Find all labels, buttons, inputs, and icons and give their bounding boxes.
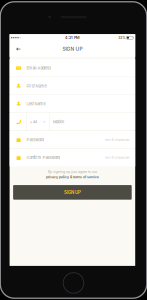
staticText: SIGN UP: [64, 190, 81, 195]
staticText: Email Address: [26, 66, 51, 70]
button[interactable]: First Name: [10, 77, 135, 95]
staticText: Mobile: [53, 119, 64, 124]
button[interactable]: Last Name: [10, 95, 135, 113]
button[interactable]: Email Address: [10, 59, 135, 77]
staticText: First Name: [26, 83, 46, 88]
button[interactable]: SIGN UP: [13, 185, 132, 200]
button[interactable]: Confirm Password: [10, 149, 135, 166]
staticText: 32%: [118, 36, 125, 40]
staticText: 4:21 PM: [65, 35, 80, 40]
staticText: By signing up you agree to our: [48, 170, 97, 174]
staticText: Confirm Password: [26, 155, 59, 160]
button[interactable]: Back: [10, 41, 25, 57]
staticText: Password: [26, 137, 43, 142]
button[interactable]: Password: [10, 131, 135, 148]
button[interactable]: +44: [10, 113, 135, 131]
staticText: min 8 character: [104, 156, 129, 160]
staticText: min 8 character: [104, 138, 129, 142]
button[interactable]: privacy policy & terms of service: [46, 175, 99, 179]
staticText: SIGN UP: [62, 46, 82, 52]
staticText: +44: [30, 119, 37, 124]
staticText: privacy policy & terms of service: [46, 175, 99, 179]
staticText: Last Name: [26, 101, 45, 106]
